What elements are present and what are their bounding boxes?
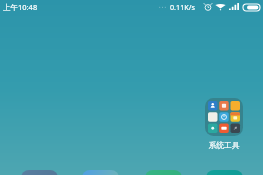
button[interactable]: Messages (145, 170, 182, 175)
button[interactable]: Camera (206, 170, 243, 175)
button[interactable]: Browser (82, 170, 119, 175)
button[interactable]: Phone (21, 170, 58, 175)
button[interactable]: 系统工具 (198, 98, 250, 154)
staticText: 系统工具 (198, 140, 250, 150)
staticText: 0.11K/s (170, 2, 195, 12)
staticText: 上午10:48 (3, 2, 38, 12)
